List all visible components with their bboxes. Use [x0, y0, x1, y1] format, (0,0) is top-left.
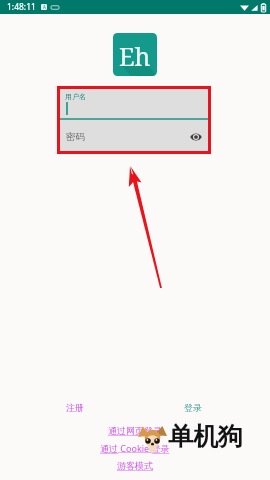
button[interactable]: Show password	[189, 130, 203, 144]
staticText: 注册	[66, 402, 84, 413]
staticText: 通过网页登录	[108, 425, 162, 436]
button[interactable]: 密码	[58, 120, 209, 153]
button[interactable]: 通过 Cookie 登录	[97, 441, 173, 455]
staticText: 游客模式	[117, 460, 153, 471]
button[interactable]: 游客模式	[114, 459, 156, 472]
staticText: 单机狗	[168, 421, 243, 452]
staticText: Eh	[119, 39, 151, 73]
staticText: 1:48:11	[7, 1, 36, 13]
staticText: 通过 Cookie 登录	[100, 442, 170, 454]
button[interactable]: 登录	[182, 400, 204, 415]
button[interactable]: 用户名	[58, 87, 209, 120]
staticText: A	[43, 4, 46, 10]
button[interactable]: 通过网页登录	[105, 424, 165, 437]
staticText: 登录	[184, 402, 202, 413]
staticText: 用户名	[65, 92, 86, 101]
staticText: 密码	[66, 131, 85, 143]
button[interactable]: 注册	[64, 400, 86, 415]
button[interactable]: App logo	[113, 33, 157, 76]
